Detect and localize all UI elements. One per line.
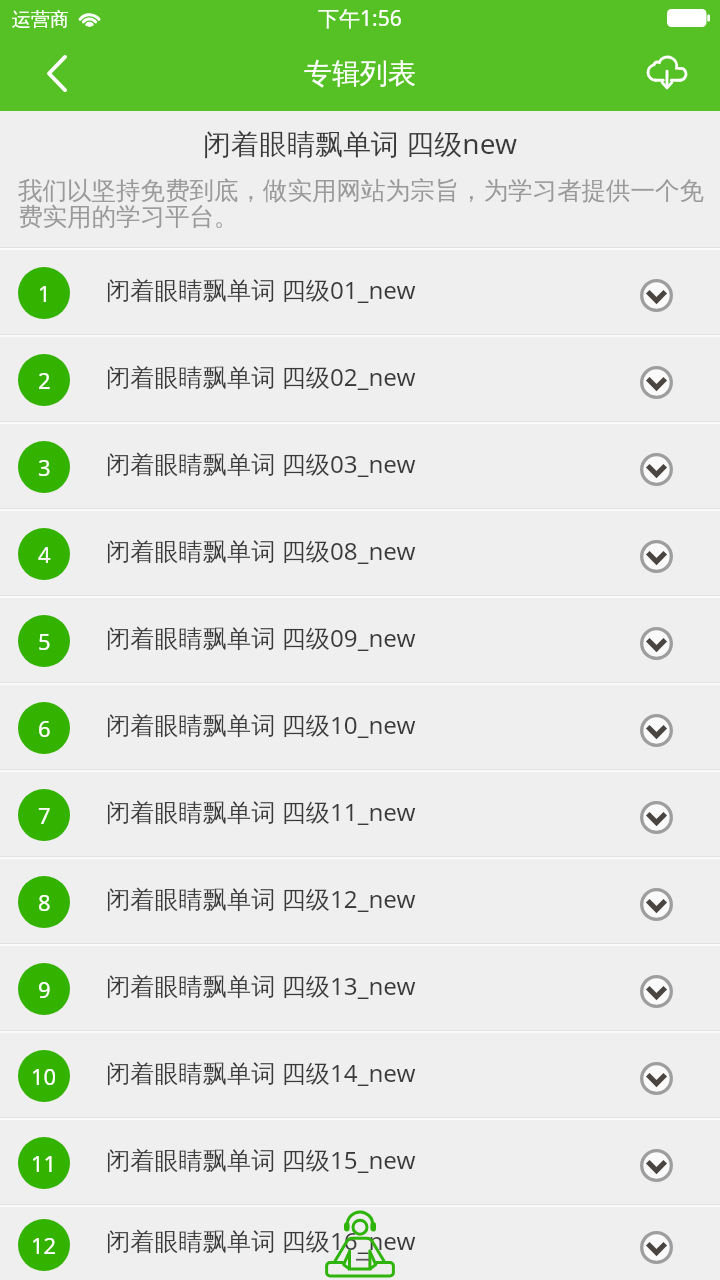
button[interactable]: Expand bbox=[624, 785, 688, 849]
button[interactable]: Expand bbox=[624, 611, 688, 675]
button[interactable]: 2 bbox=[0, 337, 720, 421]
staticText: 闭着眼睛飘单词 四级13_new bbox=[106, 969, 416, 1002]
button[interactable]: 11 bbox=[0, 1120, 720, 1204]
staticText: 闭着眼睛飘单词 四级12_new bbox=[106, 882, 416, 915]
button[interactable]: 4 bbox=[0, 511, 720, 595]
staticText: 闭着眼睛飘单词 四级08_new bbox=[106, 534, 416, 567]
button[interactable]: 9 bbox=[0, 946, 720, 1030]
staticText: 1 bbox=[38, 278, 51, 308]
staticText: 闭着眼睛飘单词 四级01_new bbox=[106, 273, 416, 306]
button[interactable]: 7 bbox=[0, 772, 720, 856]
button[interactable]: 6 bbox=[0, 685, 720, 769]
button[interactable]: Customer service bbox=[325, 1211, 395, 1279]
staticText: 10 bbox=[31, 1061, 57, 1091]
staticText: 8 bbox=[38, 887, 51, 917]
staticText: 闭着眼睛飘单词 四级11_new bbox=[106, 795, 416, 828]
button[interactable]: Expand bbox=[624, 1133, 688, 1197]
button[interactable]: 3 bbox=[0, 424, 720, 508]
staticText: 闭着眼睛飘单词 四级new bbox=[0, 124, 720, 162]
staticText: 闭着眼睛飘单词 四级16_new bbox=[106, 1224, 416, 1257]
button[interactable]: Expand bbox=[624, 959, 688, 1023]
button[interactable]: 10 bbox=[0, 1033, 720, 1117]
staticText: 运营商 bbox=[12, 8, 69, 32]
button[interactable]: Download bbox=[616, 40, 720, 111]
staticText: 6 bbox=[38, 713, 51, 743]
button[interactable]: Expand bbox=[624, 437, 688, 501]
staticText: 闭着眼睛飘单词 四级10_new bbox=[106, 708, 416, 741]
staticText: 闭着眼睛飘单词 四级03_new bbox=[106, 447, 416, 480]
staticText: 12 bbox=[31, 1230, 57, 1260]
button[interactable]: 1 bbox=[0, 250, 720, 334]
button[interactable]: Expand bbox=[624, 1215, 688, 1279]
staticText: 我们以坚持免费到底，做实用网站为宗旨，为学习者提供一个免费实用的学习平台。 bbox=[18, 175, 704, 232]
button[interactable]: Expand bbox=[624, 1046, 688, 1110]
staticText: 4 bbox=[38, 539, 51, 569]
staticText: 闭着眼睛飘单词 四级02_new bbox=[106, 360, 416, 393]
button[interactable]: 8 bbox=[0, 859, 720, 943]
button[interactable]: Back bbox=[0, 40, 104, 111]
staticText: 2 bbox=[38, 365, 51, 395]
staticText: 闭着眼睛飘单词 四级09_new bbox=[106, 621, 416, 654]
button[interactable]: Expand bbox=[624, 263, 688, 327]
staticText: 7 bbox=[38, 800, 51, 830]
staticText: 9 bbox=[38, 974, 51, 1004]
button[interactable]: 5 bbox=[0, 598, 720, 682]
staticText: 11 bbox=[31, 1148, 57, 1178]
button[interactable]: Expand bbox=[624, 350, 688, 414]
staticText: 闭着眼睛飘单词 四级14_new bbox=[106, 1056, 416, 1089]
staticText: 专辑列表 bbox=[304, 56, 416, 91]
staticText: 3 bbox=[38, 452, 51, 482]
button[interactable]: 12 bbox=[0, 1207, 720, 1280]
staticText: 下午1:56 bbox=[318, 4, 402, 33]
staticText: 闭着眼睛飘单词 四级15_new bbox=[106, 1143, 416, 1176]
button[interactable]: Expand bbox=[624, 698, 688, 762]
staticText: 5 bbox=[38, 626, 51, 656]
button[interactable]: Expand bbox=[624, 872, 688, 936]
button[interactable]: Expand bbox=[624, 524, 688, 588]
